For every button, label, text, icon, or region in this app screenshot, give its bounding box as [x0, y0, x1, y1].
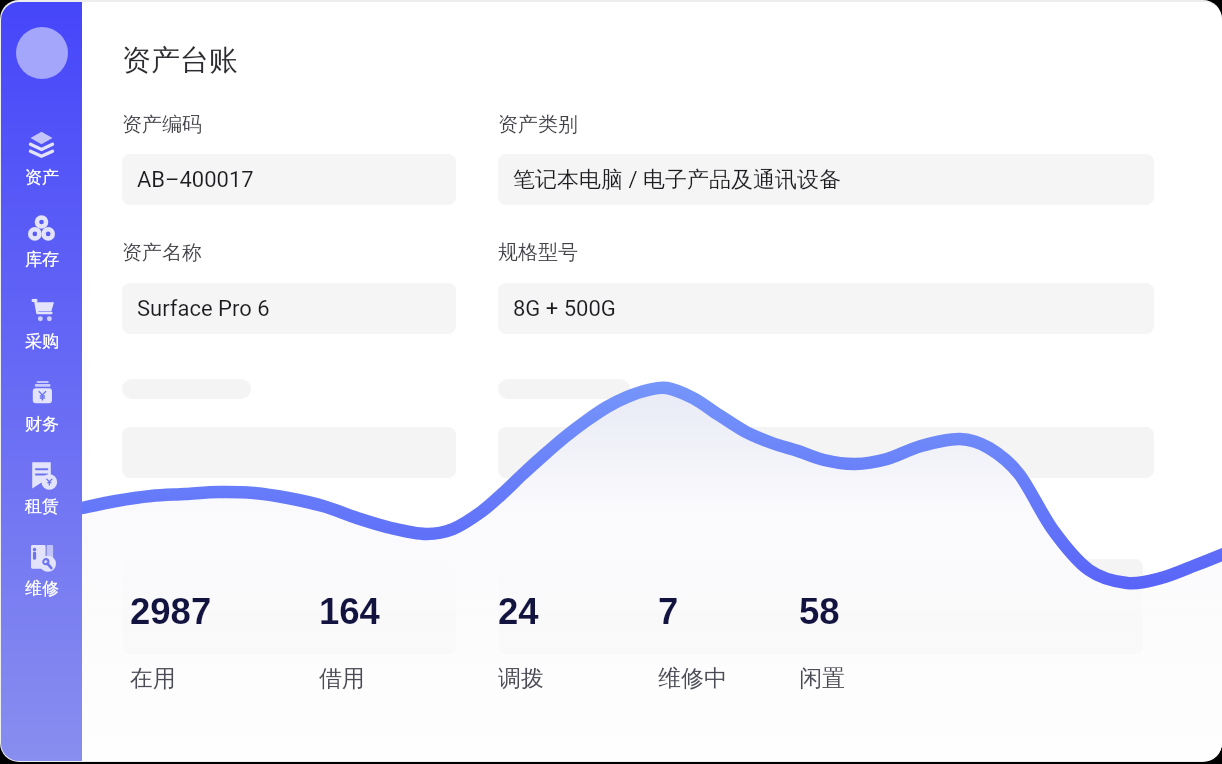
button[interactable]: 资产 — [9, 125, 74, 194]
staticText: 164 — [319, 591, 380, 632]
staticText: 库存 — [25, 249, 59, 270]
staticText: 24 — [498, 591, 539, 632]
button[interactable]: AB–400017 — [122, 154, 456, 205]
button[interactable]: 2987 — [118, 587, 224, 699]
staticText: 2987 — [130, 591, 212, 632]
staticText: Surface Pro 6 — [137, 296, 270, 322]
staticText: 资产台账 — [122, 42, 238, 79]
staticText: 调拨 — [498, 664, 544, 693]
button[interactable]: 租赁 — [9, 454, 74, 523]
staticText: 财务 — [25, 414, 59, 435]
button[interactable]: 8G + 500G — [498, 283, 1154, 334]
staticText: 资产编码 — [122, 112, 202, 137]
staticText: 资产名称 — [122, 240, 202, 265]
button[interactable]: Surface Pro 6 — [122, 283, 456, 334]
button[interactable]: 24 — [486, 587, 556, 699]
staticText: 采购 — [25, 331, 59, 352]
staticText: 维修中 — [658, 664, 727, 693]
button[interactable]: 58 — [787, 587, 857, 699]
staticText: 租赁 — [25, 496, 59, 517]
staticText: 58 — [799, 591, 840, 632]
button[interactable]: Profile — [16, 27, 68, 79]
staticText: 7 — [658, 591, 679, 632]
staticText: 借用 — [319, 664, 365, 693]
staticText: 资产类别 — [498, 112, 578, 137]
button[interactable]: 财务 — [9, 372, 74, 441]
staticText: 维修 — [25, 578, 59, 599]
button[interactable]: 笔记本电脑 / 电子产品及通讯设备 — [498, 154, 1154, 205]
staticText: 8G + 500G — [513, 296, 616, 322]
button[interactable]: 7 — [646, 587, 739, 699]
button[interactable]: 库存 — [9, 207, 74, 276]
staticText: 规格型号 — [498, 240, 578, 265]
staticText: 在用 — [130, 664, 176, 693]
staticText: 闲置 — [799, 664, 845, 693]
button[interactable]: 维修 — [9, 536, 74, 605]
staticText: AB–400017 — [137, 167, 254, 193]
staticText: 笔记本电脑 / 电子产品及通讯设备 — [513, 166, 841, 194]
staticText: 资产 — [25, 167, 59, 188]
button[interactable]: 采购 — [9, 289, 74, 358]
button[interactable]: 164 — [307, 587, 392, 699]
